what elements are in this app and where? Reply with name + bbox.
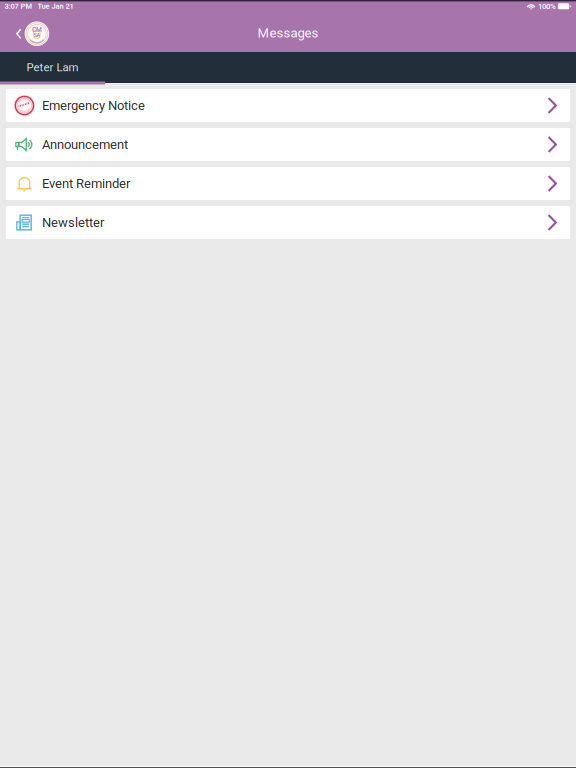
staticText: Emergency Notice [42, 98, 145, 113]
staticText: 3:07 PM [4, 2, 32, 11]
staticText: Announcement [42, 137, 128, 152]
button[interactable]: Newsletter [6, 206, 570, 239]
staticText: Peter Lam [26, 61, 78, 74]
staticText: 100% [538, 2, 556, 11]
staticText: Messages [257, 25, 318, 41]
button[interactable]: Back [0, 18, 49, 48]
button[interactable]: Event Reminder [6, 167, 570, 200]
button[interactable]: Emergency Notice [6, 89, 570, 122]
staticText: Event Reminder [42, 176, 130, 191]
button[interactable]: Announcement [6, 128, 570, 161]
staticText: Newsletter [42, 215, 104, 230]
staticText: SA [33, 32, 40, 38]
button[interactable]: Peter Lam [0, 50, 105, 81]
staticText: CM [32, 26, 42, 34]
staticText: Tue Jan 21 [37, 2, 73, 11]
